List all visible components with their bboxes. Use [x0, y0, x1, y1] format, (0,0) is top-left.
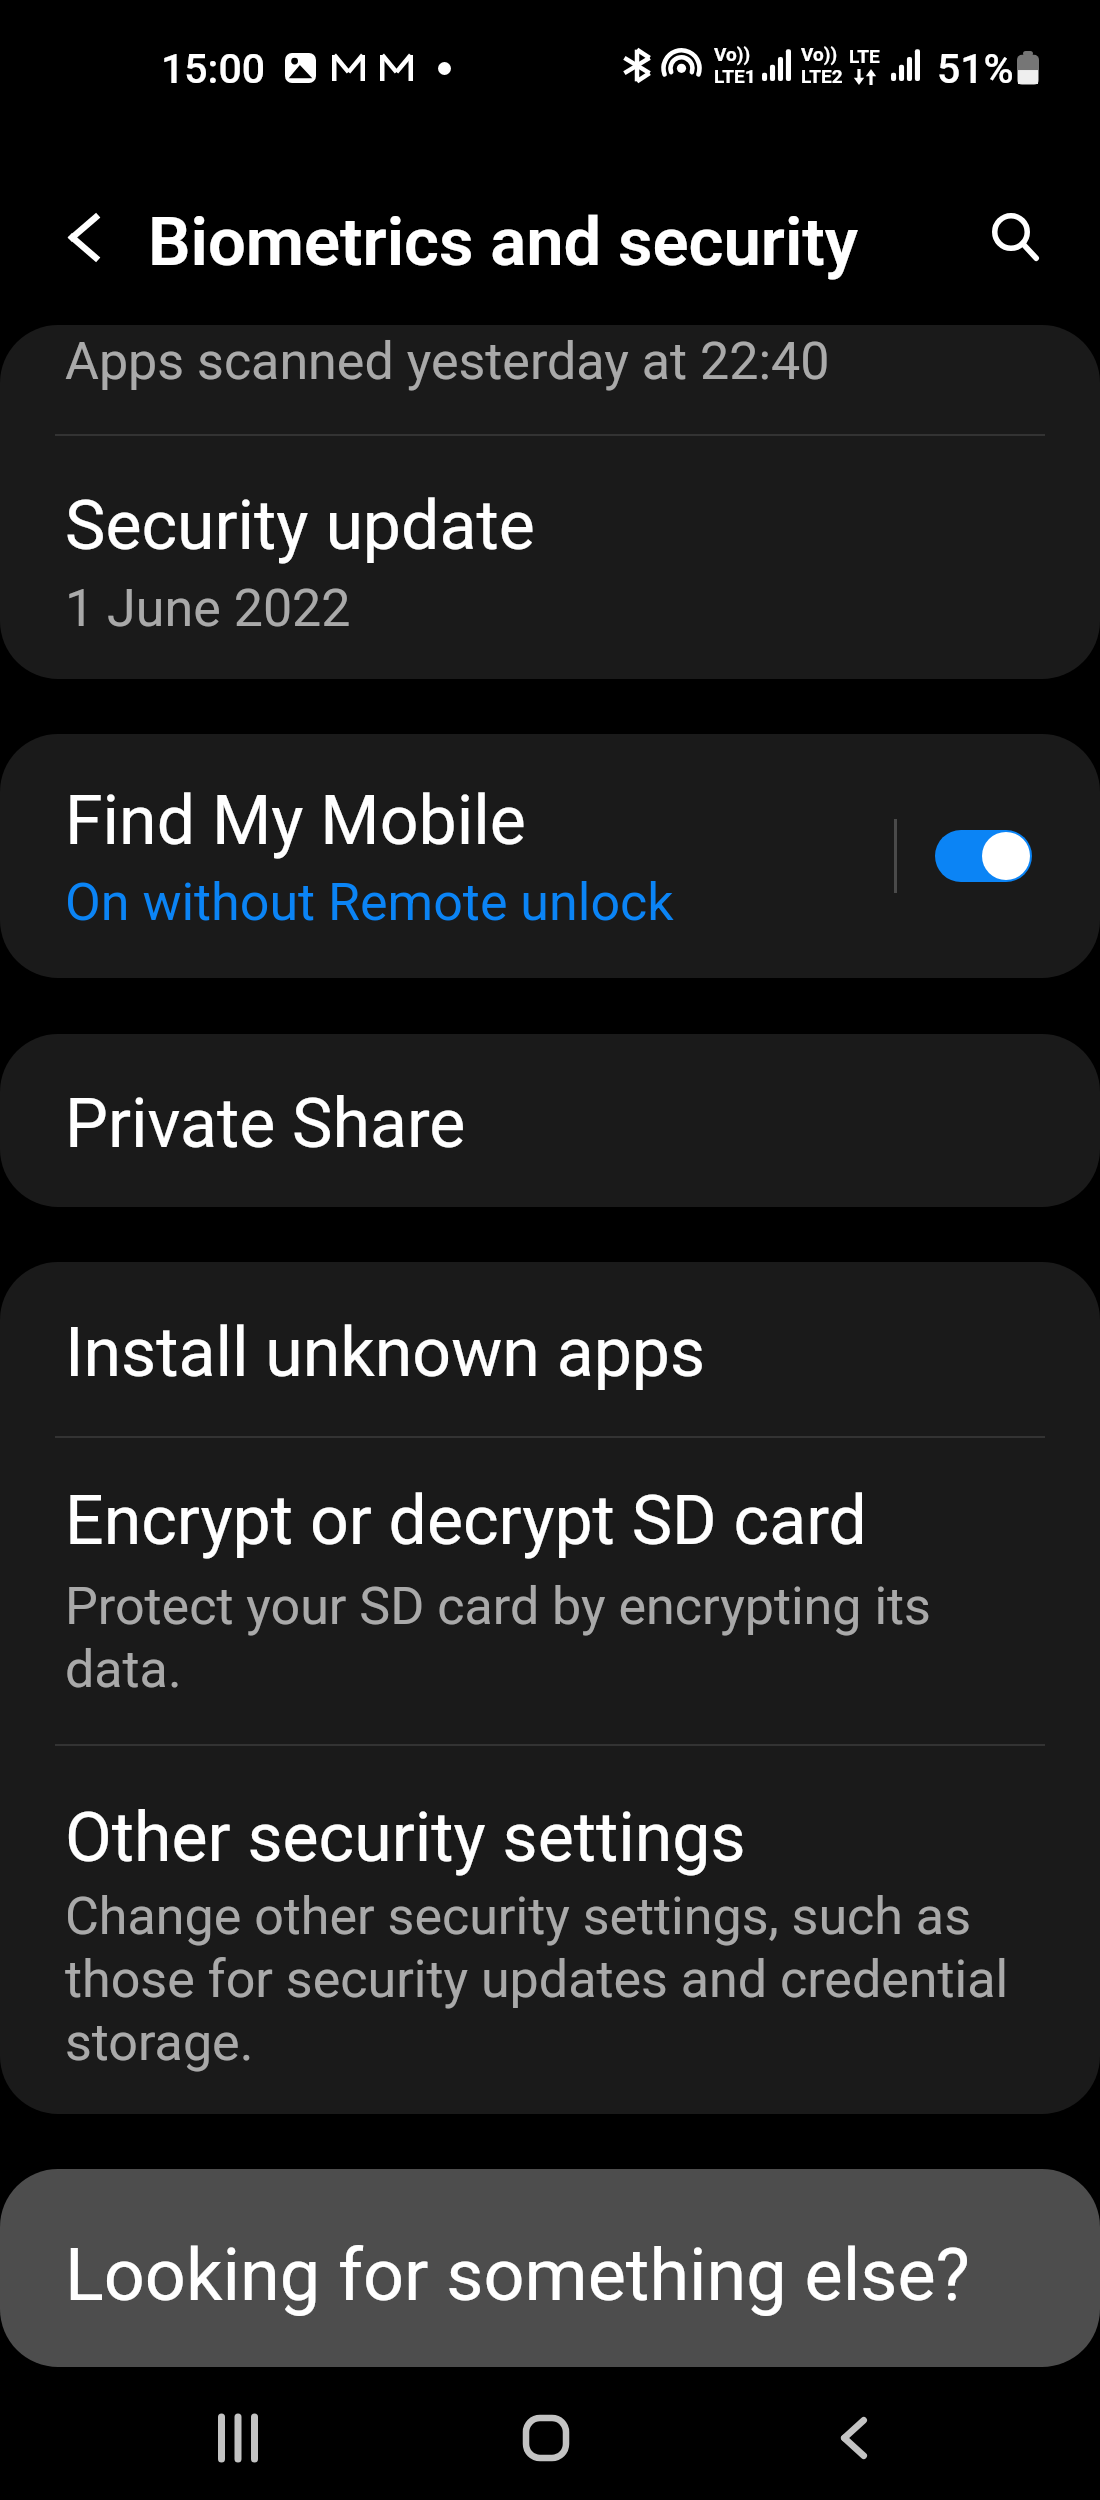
staticText: Apps scanned yesterday at 22:40 — [65, 329, 830, 392]
staticText: LTE1 — [714, 65, 756, 87]
button[interactable]: Private Share — [0, 1034, 1100, 1207]
button[interactable]: Home — [491, 2383, 601, 2493]
staticText: Vo)) — [714, 43, 751, 65]
staticText: Protect your SD card by encrypting its d… — [65, 1574, 1048, 1700]
staticText: Biometrics and security — [148, 200, 859, 282]
button[interactable]: Find My Mobile — [0, 734, 870, 978]
staticText: Vo)) — [801, 43, 838, 65]
button[interactable]: Search — [969, 191, 1061, 283]
staticText: LTE — [849, 45, 880, 67]
staticText: Find My Mobile — [65, 778, 526, 861]
button[interactable]: Looking for something else? — [0, 2169, 1100, 2367]
button[interactable]: Install unknown apps — [0, 1262, 1100, 1436]
staticText: 1 June 2022 — [65, 576, 351, 639]
staticText: Looking for something else? — [65, 2230, 970, 2318]
staticText: Encrypt or decrypt SD card — [65, 1478, 867, 1561]
staticText: On without Remote unlock — [65, 870, 674, 933]
button[interactable]: Recent apps — [183, 2383, 293, 2493]
staticText: 51% — [937, 43, 1014, 93]
button[interactable]: Apps scanned yesterday at 22:40 — [0, 325, 1100, 434]
staticText: Private Share — [65, 1081, 466, 1164]
button[interactable]: Encrypt or decrypt SD card — [0, 1438, 1100, 1744]
staticText: Install unknown apps — [65, 1310, 706, 1393]
button[interactable]: Navigate up — [40, 194, 127, 281]
staticText: Security update — [65, 483, 535, 566]
staticText: 15:00 — [161, 43, 266, 93]
staticText: LTE2 — [801, 65, 843, 87]
button[interactable]: Find My Mobile toggle — [935, 830, 1032, 882]
button[interactable]: Other security settings — [0, 1746, 1100, 2114]
staticText: Other security settings — [65, 1795, 746, 1878]
button[interactable]: Back — [799, 2383, 909, 2493]
button[interactable]: Security update — [0, 436, 1100, 679]
staticText: Change other security settings, such as … — [65, 1884, 1048, 2073]
